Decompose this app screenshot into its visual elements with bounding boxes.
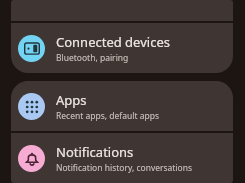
staticText: Recent apps, default apps [56, 110, 160, 122]
staticText: Notification history, conversations [56, 162, 193, 174]
staticText: Notifications [56, 143, 134, 161]
staticText: Connected devices [56, 33, 170, 51]
other: Connected devices [18, 35, 45, 62]
button[interactable]: Notifications [11, 133, 233, 183]
button[interactable]: Connected devices [11, 23, 233, 73]
button[interactable]: Apps [11, 81, 233, 131]
staticText: Apps [56, 91, 87, 109]
staticText: Bluetooth, pairing [56, 52, 129, 64]
other: Notifications [18, 145, 45, 172]
other: Apps [18, 93, 45, 120]
